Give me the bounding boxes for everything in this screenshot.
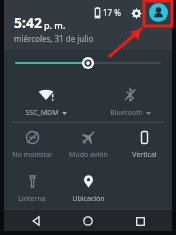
button[interactable]: Ubicación [60, 169, 116, 209]
button[interactable]: Back [26, 211, 46, 231]
button[interactable]: Vertical [116, 123, 172, 167]
staticText: No molestar [12, 150, 53, 160]
staticText: 17 % [103, 7, 121, 18]
button[interactable]: Settings [128, 5, 144, 21]
button[interactable]: Recent apps [130, 211, 150, 231]
staticText: p. m. [44, 19, 66, 31]
button[interactable]: Bluetooth [88, 82, 172, 122]
button[interactable]: Home [78, 211, 98, 231]
button[interactable]: No molestar [4, 123, 60, 167]
button[interactable]: Brightness [4, 50, 172, 76]
staticText: Ubicación [72, 194, 105, 204]
staticText: SSC_MDM [25, 108, 59, 118]
button[interactable]: 5:42 [14, 13, 94, 44]
staticText: Bluetooth [110, 108, 143, 118]
staticText: Vertical [132, 150, 157, 160]
button[interactable]: SSC_MDM [4, 82, 88, 122]
staticText: Linterna [18, 194, 46, 204]
staticText: Modo avión [69, 150, 108, 160]
staticText: miércoles, 31 de julio [14, 33, 94, 44]
button[interactable]: Linterna [4, 169, 60, 209]
staticText: 5:42 [14, 13, 42, 32]
button[interactable]: User account [149, 3, 168, 22]
button[interactable]: Modo avión [60, 123, 116, 167]
